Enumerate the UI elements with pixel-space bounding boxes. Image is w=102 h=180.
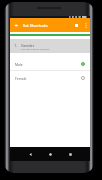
button[interactable]: More options (82, 18, 90, 32)
button[interactable]: Female (10, 71, 90, 85)
staticText: Male (15, 62, 23, 67)
button[interactable]: Save (71, 18, 82, 32)
staticText: Set Shortcuts (23, 23, 48, 28)
button[interactable]: Male (10, 57, 90, 71)
button[interactable]: Home (45, 150, 55, 159)
button[interactable]: Back (25, 150, 35, 159)
staticText: Gender (21, 43, 35, 48)
button[interactable]: Back (10, 18, 23, 32)
button[interactable]: Recents (65, 150, 75, 159)
staticText: Female (15, 76, 27, 81)
staticText: 1. (14, 43, 18, 48)
staticText: Are you male or female? (21, 47, 50, 50)
